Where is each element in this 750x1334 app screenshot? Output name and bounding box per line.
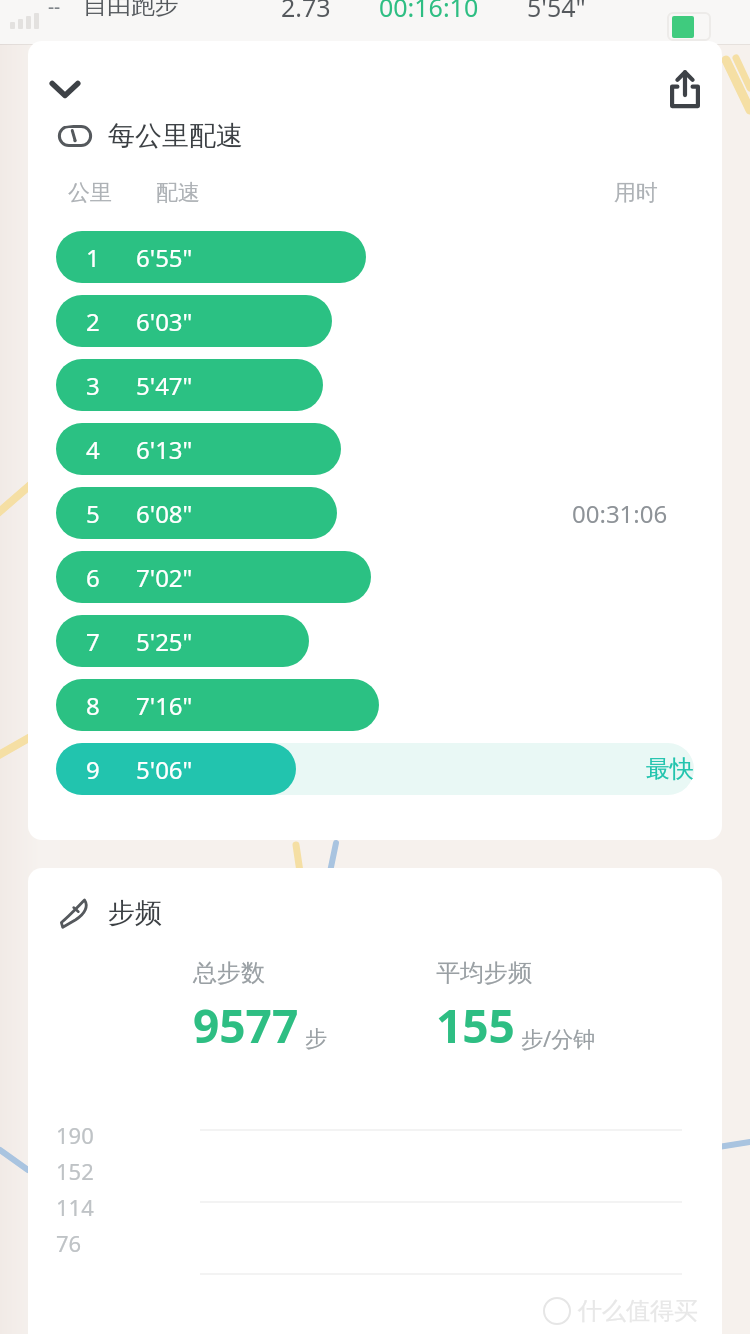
staticText: 5'25" xyxy=(136,625,193,658)
staticText: 00:16:10 xyxy=(379,0,479,24)
staticText: 6'13" xyxy=(136,433,193,466)
staticText: 什么值得买 xyxy=(578,1296,698,1326)
staticText: 3 xyxy=(86,369,100,402)
staticText: 最快 xyxy=(646,754,694,784)
button[interactable]: 2 xyxy=(28,295,722,347)
staticText: 76 xyxy=(56,1228,82,1258)
button[interactable]: 1 xyxy=(28,231,722,283)
staticText: 7 xyxy=(86,625,100,658)
staticText: 4 xyxy=(86,433,100,466)
staticText: 7'02" xyxy=(136,561,193,594)
button[interactable]: Collapse xyxy=(28,52,102,126)
staticText: 6 xyxy=(86,561,100,594)
button[interactable]: 8 xyxy=(28,679,722,731)
staticText: 190 xyxy=(56,1120,94,1150)
staticText: 5'06" xyxy=(136,753,193,786)
staticText: 2.73 xyxy=(281,0,331,24)
staticText: 自由跑步 xyxy=(83,0,179,20)
button[interactable]: 6 xyxy=(28,551,722,603)
staticText: 步/分钟 xyxy=(521,1023,596,1053)
staticText: 8 xyxy=(86,689,100,722)
staticText: 2 xyxy=(86,305,100,338)
staticText: 1 xyxy=(86,241,100,274)
staticText: 152 xyxy=(56,1156,94,1186)
staticText: -- xyxy=(48,0,61,20)
staticText: 配速 xyxy=(156,179,200,207)
staticText: 6'55" xyxy=(136,241,193,274)
staticText: 6'08" xyxy=(136,497,193,530)
staticText: 6'03" xyxy=(136,305,193,338)
button[interactable]: 4 xyxy=(28,423,722,475)
staticText: 平均步频 xyxy=(436,958,532,988)
button[interactable]: 5 xyxy=(28,487,722,539)
button[interactable]: 3 xyxy=(28,359,722,411)
staticText: 总步数 xyxy=(193,958,265,988)
staticText: 公里 xyxy=(68,179,112,207)
staticText: 步 xyxy=(305,1025,327,1053)
button[interactable]: 9 xyxy=(28,743,722,795)
button[interactable]: 7 xyxy=(28,615,722,667)
staticText: 步频 xyxy=(108,896,162,930)
staticText: 5'47" xyxy=(136,369,193,402)
staticText: 9 xyxy=(86,753,100,786)
staticText: 9577 xyxy=(193,994,299,1057)
staticText: 5'54" xyxy=(527,0,586,24)
staticText: 00:31:06 xyxy=(572,497,668,530)
staticText: 114 xyxy=(56,1192,94,1222)
staticText: 5 xyxy=(86,497,100,530)
button[interactable]: Share xyxy=(648,52,722,126)
staticText: 每公里配速 xyxy=(108,119,243,153)
staticText: 155 xyxy=(436,994,515,1057)
staticText: 用时 xyxy=(614,179,658,207)
staticText: 7'16" xyxy=(136,689,193,722)
